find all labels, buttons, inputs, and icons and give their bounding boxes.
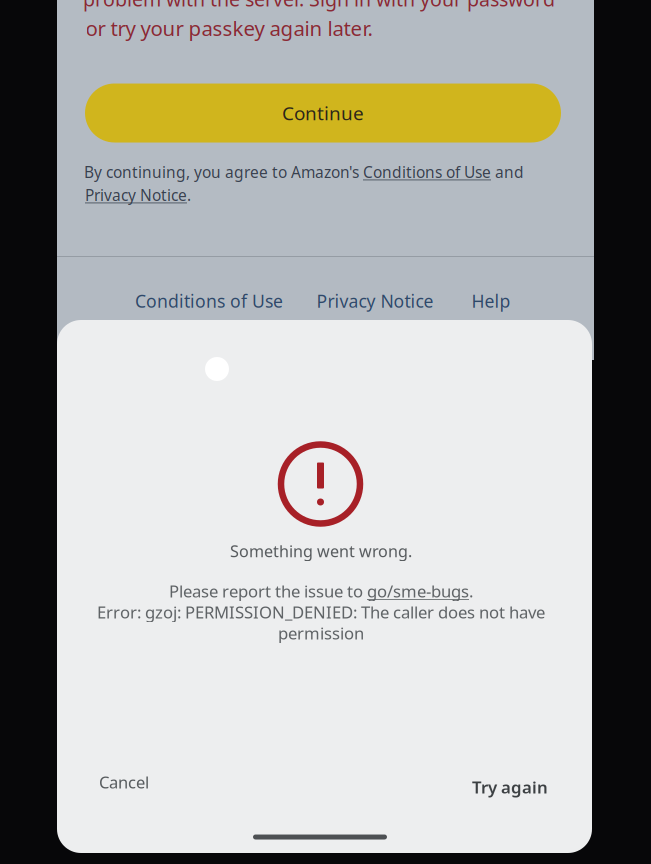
button[interactable]: Help [463, 280, 518, 322]
staticText: Cancel [99, 771, 149, 793]
staticText: Continue [282, 100, 364, 126]
button[interactable]: Continue [85, 83, 561, 142]
staticText: By continuing, you agree to Amazon's Con… [84, 162, 524, 182]
staticText: or try your passkey again later. [85, 14, 372, 42]
staticText: problem with the server. Sign in with yo… [83, 0, 555, 12]
button[interactable]: Conditions of Use [127, 280, 291, 322]
staticText: Error: gzoj: PERMISSION_DENIED: The call… [97, 601, 545, 623]
button[interactable]: Try again [458, 764, 562, 810]
staticText: Please report the issue to go/sme-bugs. [169, 580, 473, 602]
staticText: Privacy Notice. [85, 185, 191, 205]
staticText: Privacy Notice [316, 289, 433, 313]
button[interactable]: Privacy Notice [308, 280, 441, 322]
staticText: Help [471, 289, 510, 313]
button[interactable]: Cancel [85, 759, 163, 805]
staticText: Conditions of Use [135, 289, 283, 313]
staticText: Something went wrong. [230, 540, 412, 562]
staticText: Try again [472, 776, 548, 798]
staticText: permission [278, 622, 364, 644]
